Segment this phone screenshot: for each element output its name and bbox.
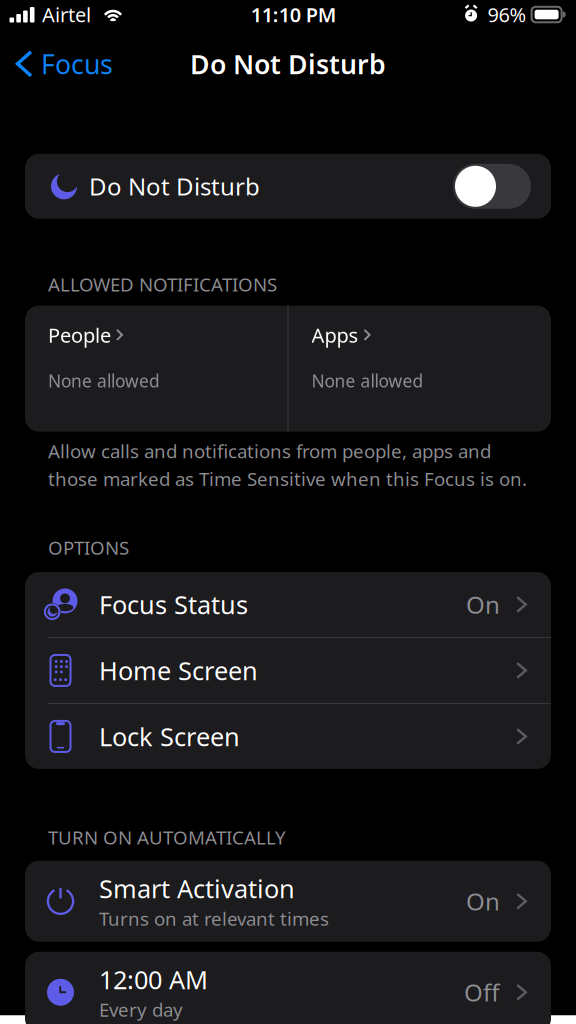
staticText: 96% <box>488 1 527 28</box>
button[interactable]: Home Screen <box>25 638 551 703</box>
staticText: Home Screen <box>99 654 258 687</box>
staticText: Lock Screen <box>99 720 240 753</box>
staticText: Do Not Disturb <box>89 170 260 202</box>
staticText: those marked as Time Sensitive when this… <box>48 466 527 491</box>
staticText: People <box>48 322 111 348</box>
staticText: On <box>466 588 500 620</box>
staticText: Focus Status <box>99 588 248 621</box>
button[interactable]: Focus <box>0 37 125 90</box>
button[interactable]: Do Not Disturb <box>0 154 576 219</box>
staticText: OPTIONS <box>48 535 129 560</box>
staticText: 12:00 AM <box>99 962 208 996</box>
staticText: Apps <box>311 322 358 348</box>
staticText: On <box>466 885 500 917</box>
staticText: None allowed <box>48 369 160 392</box>
staticText: Turns on at relevant times <box>99 906 329 931</box>
staticText: TURN ON AUTOMATICALLY <box>48 825 286 850</box>
staticText: Focus <box>41 46 113 81</box>
staticText: 11:10 PM <box>251 1 337 28</box>
button[interactable]: Apps <box>288 306 551 432</box>
staticText: Off <box>464 976 500 1008</box>
staticText: Airtel <box>42 1 91 28</box>
button[interactable]: 12:00 AM <box>25 952 551 1024</box>
button[interactable]: Focus Status <box>25 572 551 637</box>
staticText: ALLOWED NOTIFICATIONS <box>48 272 277 297</box>
button[interactable]: Lock Screen <box>25 704 551 769</box>
staticText: Allow calls and notifications from peopl… <box>48 439 491 463</box>
staticText: Do Not Disturb <box>190 46 386 81</box>
button[interactable]: People <box>25 306 287 432</box>
button[interactable]: Smart Activation <box>25 861 551 942</box>
staticText: None allowed <box>311 369 423 392</box>
staticText: Smart Activation <box>99 871 295 905</box>
staticText: Every day <box>99 997 183 1022</box>
